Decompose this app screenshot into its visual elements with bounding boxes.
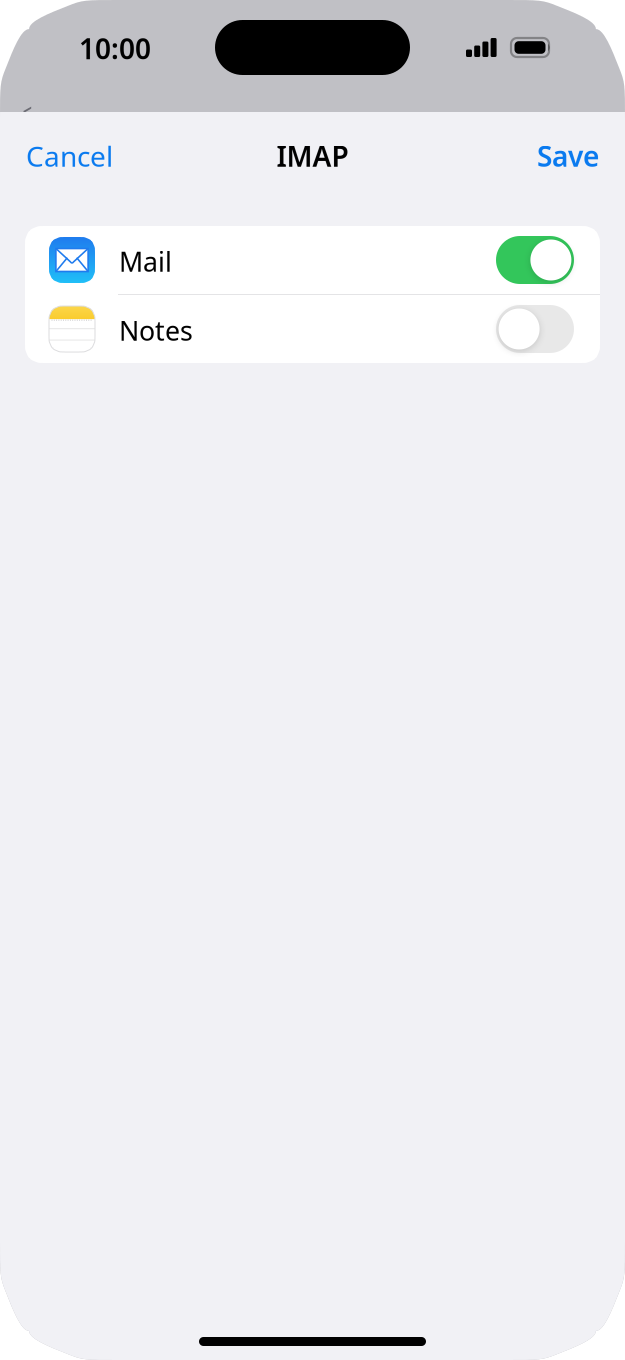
staticText: Notes (119, 313, 193, 348)
staticText: Save (537, 137, 599, 175)
button[interactable]: Save (511, 125, 625, 187)
button[interactable]: Mail (25, 226, 600, 294)
button[interactable]: Notes (25, 295, 600, 363)
button[interactable]: On (496, 236, 574, 284)
button[interactable]: Cancel (0, 125, 139, 187)
staticText: Cancel (26, 137, 113, 175)
staticText: 10:00 (79, 30, 151, 67)
staticText: Mail (119, 244, 172, 279)
staticText: IMAP (276, 137, 348, 175)
button[interactable]: Off (496, 305, 574, 353)
